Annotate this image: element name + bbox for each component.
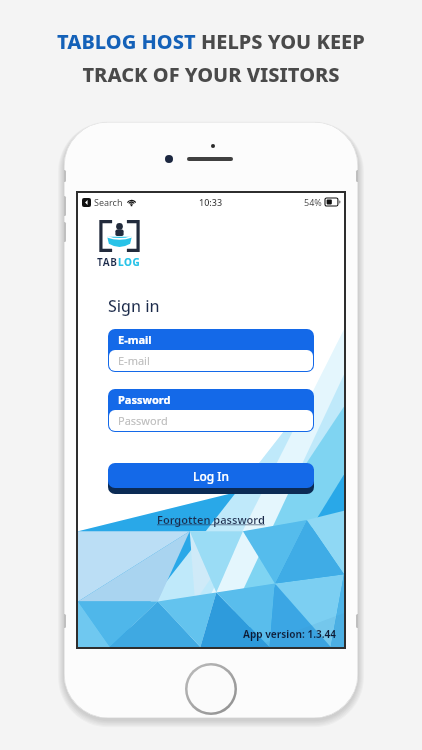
button[interactable]: Log In [108,463,314,494]
staticText: HELPS YOU KEEP [201,28,365,55]
staticText: TABLOG HOST [57,28,201,55]
button[interactable]: Forgotten password [153,510,269,529]
staticText: Search [94,196,123,208]
staticText: Password [118,413,168,428]
staticText: Password [118,392,171,407]
staticText: E-mail [118,353,150,368]
button[interactable]: Password [108,389,314,432]
staticText: Sign in [108,295,160,317]
staticText: App version: 1.3.44 [243,627,336,641]
staticText: TAB [97,255,118,269]
button[interactable]: E-mail [108,329,314,372]
staticText: TRACK OF YOUR VISITORS [82,61,340,88]
staticText: 54% [304,196,322,208]
staticText: E-mail [118,332,152,347]
staticText: Log In [193,468,230,484]
staticText: LOG [118,255,141,269]
staticText: 10:33 [199,196,223,208]
